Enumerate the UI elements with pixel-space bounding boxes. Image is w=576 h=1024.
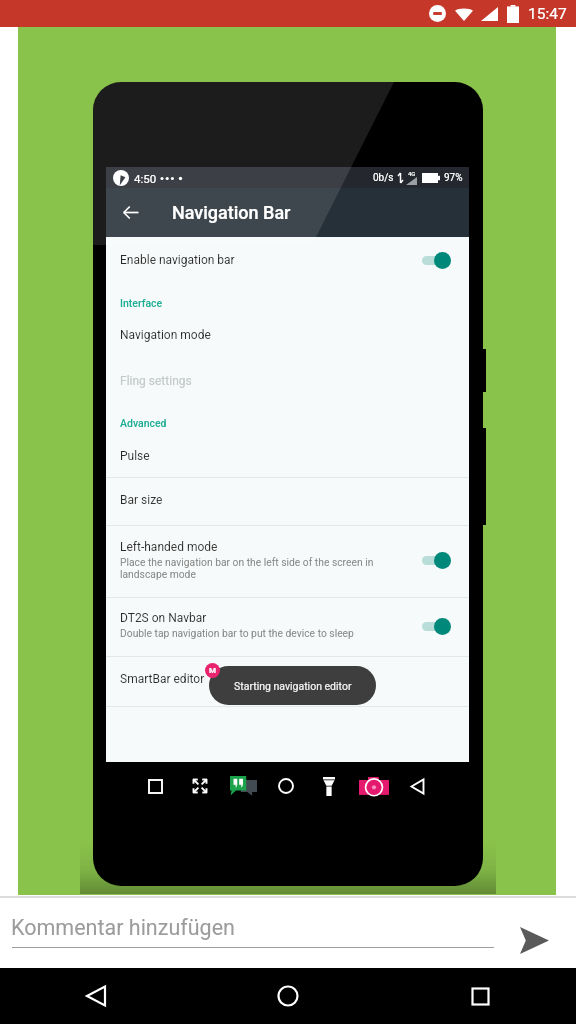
staticText: Navigation Bar [172, 202, 291, 223]
button[interactable]: Navigation mode [106, 324, 469, 346]
button[interactable]: Screenshot [135, 762, 175, 810]
staticText: 15:47 [528, 5, 567, 23]
staticText: Bar size [120, 493, 163, 507]
button[interactable]: Recents [452, 968, 508, 1024]
staticText: SmartBar editor [120, 672, 205, 686]
staticText: Left-handed mode [120, 540, 218, 554]
staticText: 4G [408, 170, 416, 177]
staticText: Navigation mode [120, 328, 211, 342]
staticText: Kommentar hinzufügen [11, 915, 235, 940]
button[interactable]: Back [68, 968, 124, 1024]
button[interactable]: Expand [180, 762, 220, 810]
button[interactable]: Back [397, 762, 437, 810]
button[interactable]: Bar size [106, 489, 469, 511]
button[interactable]: Chat [223, 762, 263, 810]
button[interactable]: Fling settings [106, 370, 469, 392]
staticText: Fling settings [120, 374, 192, 388]
staticText: 4:50 [134, 172, 157, 185]
staticText: landscape mode [120, 568, 196, 580]
staticText: M [209, 666, 217, 675]
staticText: Double tap navigation bar to put the dev… [120, 627, 354, 639]
staticText: Advanced [120, 417, 167, 429]
button[interactable]: Camera [354, 762, 394, 810]
button[interactable]: Flashlight [309, 762, 349, 810]
button[interactable]: DT2S on Navbar [106, 607, 469, 629]
button[interactable]: Send comment [510, 916, 558, 964]
staticText: Interface [120, 297, 163, 309]
staticText: 0b/s [373, 172, 394, 184]
button[interactable]: Pulse [106, 445, 469, 467]
staticText: Starting navigation editor [234, 680, 352, 692]
button[interactable]: Left-handed mode [106, 536, 469, 558]
button[interactable]: SmartBar editor [106, 668, 469, 690]
button[interactable]: Home [266, 762, 306, 810]
button[interactable]: Home [260, 968, 316, 1024]
staticText: Place the navigation bar on the left sid… [120, 556, 374, 568]
staticText: DT2S on Navbar [120, 611, 207, 625]
staticText: 97% [444, 172, 463, 184]
button[interactable]: Enable navigation bar [106, 249, 469, 271]
staticText: Pulse [120, 449, 150, 463]
button[interactable]: Back [106, 188, 156, 237]
button[interactable]: Kommentar hinzufügen [0, 898, 506, 968]
staticText: Enable navigation bar [120, 253, 235, 267]
